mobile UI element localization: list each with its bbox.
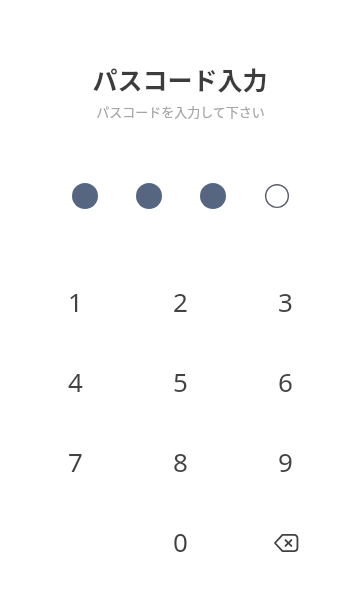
staticText: 8 xyxy=(173,444,188,479)
button[interactable]: 2 xyxy=(128,261,233,341)
button[interactable]: 7 xyxy=(23,421,128,501)
button[interactable]: 4 xyxy=(23,341,128,421)
button[interactable]: 5 xyxy=(128,341,233,421)
button[interactable] xyxy=(72,183,98,209)
staticText: 5 xyxy=(173,364,188,399)
staticText: 0 xyxy=(173,524,188,559)
button[interactable]: 6 xyxy=(233,341,338,421)
button[interactable]: 1 xyxy=(23,261,128,341)
button[interactable] xyxy=(136,183,162,209)
staticText: パスコード入力 xyxy=(92,61,268,97)
staticText: パスコードを入力して下さい xyxy=(96,102,265,121)
staticText: 1 xyxy=(68,284,83,319)
staticText: 9 xyxy=(278,444,293,479)
other: Backspace xyxy=(272,531,299,551)
button[interactable] xyxy=(200,183,226,209)
staticText: 6 xyxy=(278,364,293,399)
staticText: 4 xyxy=(68,364,83,399)
button[interactable]: 3 xyxy=(233,261,338,341)
staticText: 7 xyxy=(68,444,83,479)
staticText: 2 xyxy=(173,284,188,319)
button[interactable]: Backspace xyxy=(233,501,338,581)
staticText: 3 xyxy=(278,284,293,319)
button[interactable]: 8 xyxy=(128,421,233,501)
button[interactable]: 0 xyxy=(128,501,233,581)
button[interactable]: 9 xyxy=(233,421,338,501)
